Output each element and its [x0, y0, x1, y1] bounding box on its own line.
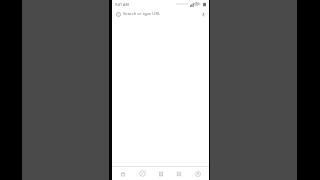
button[interactable]: Voice search [200, 11, 206, 17]
button[interactable]: Page info [112, 8, 209, 19]
button[interactable]: Page info [115, 11, 121, 17]
button[interactable]: Explore [134, 167, 150, 180]
button[interactable]: Bookmarks [153, 167, 169, 180]
button[interactable]: Account [190, 167, 206, 180]
staticText: Search or type URL [123, 11, 200, 17]
button[interactable]: Downloads [171, 167, 187, 180]
staticText: 9:41 AM [115, 2, 129, 7]
button[interactable]: Home [115, 167, 131, 180]
